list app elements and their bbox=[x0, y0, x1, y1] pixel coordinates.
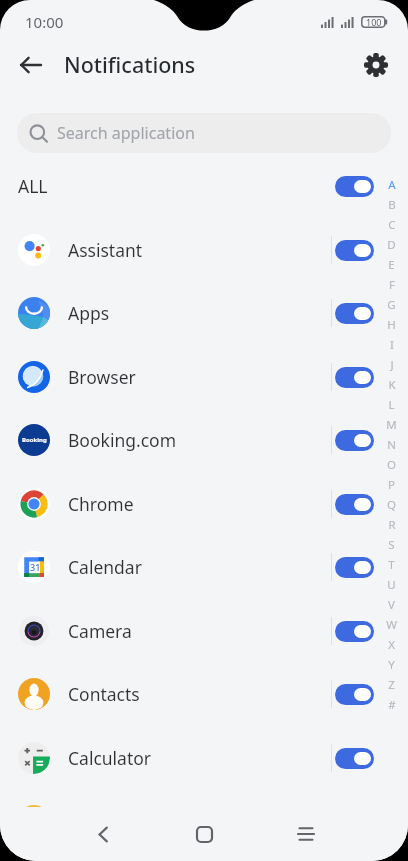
button[interactable]: Assistant bbox=[0, 218, 408, 282]
staticText: O bbox=[387, 457, 396, 473]
staticText: B bbox=[388, 197, 396, 213]
button[interactable]: Calculator bbox=[0, 726, 408, 790]
button[interactable]: Browser bbox=[0, 345, 408, 409]
button[interactable]: Apps bbox=[0, 281, 408, 345]
staticText: G bbox=[387, 297, 396, 313]
staticText: Apps bbox=[68, 301, 110, 325]
staticText: Search application bbox=[57, 122, 195, 144]
staticText: Calendar bbox=[68, 555, 142, 579]
staticText: C bbox=[388, 217, 396, 233]
staticText: Notifications bbox=[64, 50, 196, 79]
staticText: Z bbox=[388, 677, 395, 693]
staticText: K bbox=[388, 377, 396, 393]
button[interactable]: Contacts bbox=[0, 662, 408, 726]
staticText: S bbox=[388, 537, 395, 553]
button[interactable]: Back bbox=[9, 43, 53, 87]
button[interactable]: Toggle notifications bbox=[335, 494, 374, 515]
button[interactable]: Back bbox=[78, 809, 128, 859]
button[interactable]: Toggle notifications bbox=[335, 430, 374, 451]
staticText: Assistant bbox=[68, 238, 143, 262]
staticText: R bbox=[388, 517, 396, 533]
staticText: Calculator bbox=[68, 746, 152, 770]
staticText: Camera bbox=[68, 619, 132, 643]
button[interactable]: Home bbox=[179, 809, 229, 859]
staticText: Booking bbox=[22, 436, 47, 444]
staticText: Chrome bbox=[68, 492, 134, 516]
button[interactable]: Toggle notifications bbox=[335, 621, 374, 642]
staticText: A bbox=[388, 177, 396, 193]
staticText: W bbox=[386, 617, 397, 633]
staticText: J bbox=[390, 357, 394, 373]
button[interactable]: Toggle notifications bbox=[335, 367, 374, 388]
button[interactable]: ALL bbox=[0, 154, 408, 218]
button[interactable]: Camera bbox=[0, 599, 408, 663]
button[interactable]: Toggle notifications bbox=[335, 240, 374, 261]
staticText: L bbox=[388, 397, 395, 413]
staticText: P bbox=[388, 477, 395, 493]
staticText: ALL bbox=[18, 174, 48, 198]
staticText: # bbox=[388, 697, 396, 713]
staticText: Y bbox=[388, 657, 395, 673]
staticText: H bbox=[387, 317, 396, 333]
staticText: Browser bbox=[68, 365, 136, 389]
staticText: T bbox=[388, 557, 395, 573]
button[interactable]: Alphabet index bbox=[375, 175, 408, 715]
staticText: 31 bbox=[30, 561, 41, 573]
button[interactable]: Toggle notifications bbox=[335, 557, 374, 578]
staticText: D bbox=[387, 237, 396, 253]
staticText: E bbox=[388, 257, 395, 273]
staticText: Q bbox=[387, 497, 396, 513]
button[interactable]: Toggle notifications bbox=[335, 684, 374, 705]
button[interactable]: Chrome bbox=[0, 472, 408, 536]
staticText: N bbox=[387, 437, 396, 453]
staticText: I bbox=[390, 337, 394, 353]
button[interactable]: Toggle notifications bbox=[335, 176, 374, 197]
button[interactable]: Clock bbox=[0, 789, 408, 807]
button[interactable]: 31 bbox=[0, 535, 408, 599]
staticText: Booking.com bbox=[68, 428, 177, 452]
staticText: F bbox=[389, 277, 395, 293]
button[interactable]: Toggle notifications bbox=[335, 303, 374, 324]
button[interactable]: Settings bbox=[354, 43, 398, 87]
staticText: U bbox=[387, 577, 396, 593]
button[interactable]: Search application bbox=[17, 113, 391, 153]
button[interactable]: Recent apps bbox=[281, 809, 331, 859]
staticText: 100 bbox=[366, 16, 382, 28]
button[interactable]: Toggle notifications bbox=[335, 748, 374, 769]
staticText: V bbox=[388, 597, 395, 613]
staticText: Contacts bbox=[68, 682, 140, 706]
staticText: 10:00 bbox=[25, 12, 64, 32]
staticText: X bbox=[388, 637, 395, 653]
button[interactable]: Booking bbox=[0, 408, 408, 472]
staticText: M bbox=[386, 417, 397, 433]
